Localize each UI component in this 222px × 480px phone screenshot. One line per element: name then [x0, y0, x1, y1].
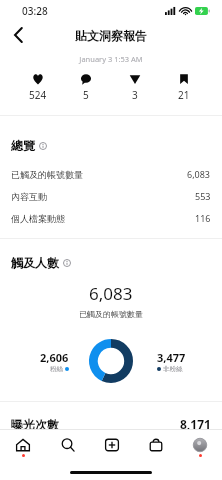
other: Info [63, 259, 71, 267]
button[interactable]: Back [6, 22, 32, 48]
staticText: 03:28 [22, 4, 48, 18]
staticText: 總覽 [11, 138, 35, 153]
button[interactable]: 5 [62, 73, 110, 102]
staticText: 21 [178, 88, 190, 102]
staticText: 觸及人數 [11, 255, 59, 270]
staticText: 來自帖面搜索 [11, 448, 65, 459]
staticText: 6,083 [89, 282, 133, 305]
button[interactable]: Home [0, 430, 45, 464]
staticText: 非粉絲 [163, 365, 183, 373]
staticText: January 3 1:53 AM [0, 54, 222, 64]
button[interactable]: Profile [178, 430, 222, 464]
button[interactable]: 已觸及的帳號數量 [11, 163, 211, 185]
button[interactable]: 個人檔案動態 [11, 207, 211, 229]
button[interactable]: 21 [159, 73, 208, 102]
staticText: 524 [29, 88, 47, 102]
staticText: 5 [83, 88, 89, 102]
other: Info [39, 142, 47, 150]
staticText: 5,714 [187, 447, 211, 459]
staticText: 116 [195, 212, 211, 224]
staticText: 2,606 [40, 350, 69, 365]
button[interactable]: Shop [134, 430, 178, 464]
staticText: 粉絲 [50, 365, 63, 373]
staticText: 3,477 [157, 350, 186, 365]
button[interactable]: 曝光次數 [11, 414, 211, 434]
staticText: 個人檔案動態 [11, 213, 65, 224]
staticText: 貼文洞察報告 [75, 28, 147, 43]
staticText: 3 [132, 88, 138, 102]
button[interactable]: 來自帖面搜索 [11, 442, 211, 464]
button[interactable]: 觸及人數 [11, 255, 211, 270]
button[interactable]: 總覽 [11, 138, 211, 153]
button[interactable]: 524 [14, 73, 62, 102]
staticText: 已觸及的帳號數量 [11, 169, 83, 180]
staticText: 曝光次數 [11, 417, 59, 432]
button[interactable]: Search [45, 430, 90, 464]
staticText: 6,083 [187, 168, 211, 180]
staticText: 內容互動 [11, 191, 47, 202]
button[interactable]: 內容互動 [11, 185, 211, 207]
button[interactable]: 3 [110, 73, 159, 102]
button[interactable]: Create [90, 430, 134, 464]
staticText: 8,171 [180, 416, 211, 432]
staticText: 已觸及的帳號數量 [79, 309, 143, 319]
staticText: 553 [195, 190, 211, 202]
